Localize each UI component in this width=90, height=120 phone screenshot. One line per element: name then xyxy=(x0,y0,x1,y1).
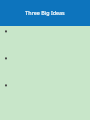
button[interactable]: First big idea xyxy=(0,29,90,56)
button[interactable]: Second big idea xyxy=(0,56,90,83)
staticText: Three Big Ideas xyxy=(25,9,65,16)
button[interactable]: Third big idea xyxy=(0,83,90,110)
